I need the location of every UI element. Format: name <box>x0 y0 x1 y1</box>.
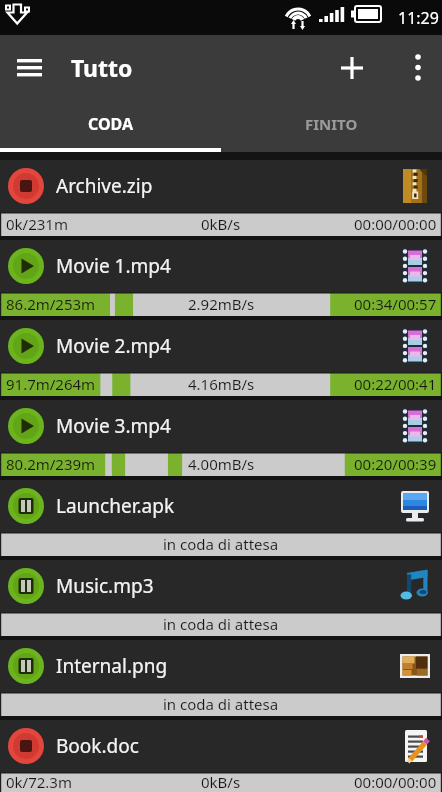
staticText: in coda di attesa <box>163 534 279 554</box>
button[interactable] <box>328 35 376 100</box>
staticText: 00:22/00:41 <box>354 374 437 394</box>
button[interactable] <box>8 248 44 284</box>
staticText: 4.00mB/s <box>188 454 255 474</box>
staticText: Book.doc <box>56 733 397 759</box>
staticText: 86.2m/253m <box>6 294 96 314</box>
button[interactable]: Music.mp3 <box>0 560 442 612</box>
staticText: 91.7m/264m <box>6 374 96 394</box>
staticText: Movie 1.mp4 <box>56 253 397 279</box>
staticText: 2.92mB/s <box>188 294 255 314</box>
staticText: 0kB/s <box>201 772 241 792</box>
staticText: in coda di attesa <box>163 614 279 634</box>
button[interactable] <box>8 728 44 764</box>
staticText: Internal.png <box>56 653 397 679</box>
staticText: 00:20/00:39 <box>354 454 437 474</box>
staticText: 00:00/00:00 <box>354 214 437 234</box>
button[interactable] <box>8 168 44 204</box>
button[interactable] <box>8 488 44 524</box>
button[interactable] <box>8 328 44 364</box>
button[interactable]: FINITO <box>221 100 442 148</box>
staticText: Tutto <box>71 52 133 83</box>
button[interactable]: Launcher.apk <box>0 480 442 532</box>
button[interactable]: Internal.png <box>0 640 442 692</box>
staticText: CODA <box>88 113 134 135</box>
staticText: FINITO <box>305 114 358 134</box>
staticText: 00:34/00:57 <box>354 294 437 314</box>
staticText: 00:00/00:00 <box>354 772 437 792</box>
button[interactable] <box>8 648 44 684</box>
staticText: Launcher.apk <box>56 493 397 519</box>
button[interactable]: Movie 1.mp4 <box>0 240 442 292</box>
staticText: Movie 3.mp4 <box>56 413 397 439</box>
staticText: 0k/72.3m <box>6 772 72 792</box>
staticText: 0kB/s <box>201 214 241 234</box>
staticText: in coda di attesa <box>163 694 279 714</box>
button[interactable]: Movie 3.mp4 <box>0 400 442 452</box>
button[interactable] <box>5 35 53 100</box>
button[interactable]: Book.doc <box>0 720 442 772</box>
staticText: 4.16mB/s <box>188 374 255 394</box>
button[interactable]: Archive.zip <box>0 160 442 212</box>
staticText: Movie 2.mp4 <box>56 333 397 359</box>
staticText: 11:29 <box>398 7 439 29</box>
staticText: 80.2m/239m <box>6 454 96 474</box>
staticText: 0k/231m <box>6 214 68 234</box>
button[interactable] <box>396 35 440 100</box>
button[interactable] <box>8 408 44 444</box>
staticText: Music.mp3 <box>56 573 397 599</box>
button[interactable] <box>8 568 44 604</box>
staticText: Archive.zip <box>56 173 397 199</box>
button[interactable]: Movie 2.mp4 <box>0 320 442 372</box>
button[interactable]: CODA <box>0 100 221 148</box>
